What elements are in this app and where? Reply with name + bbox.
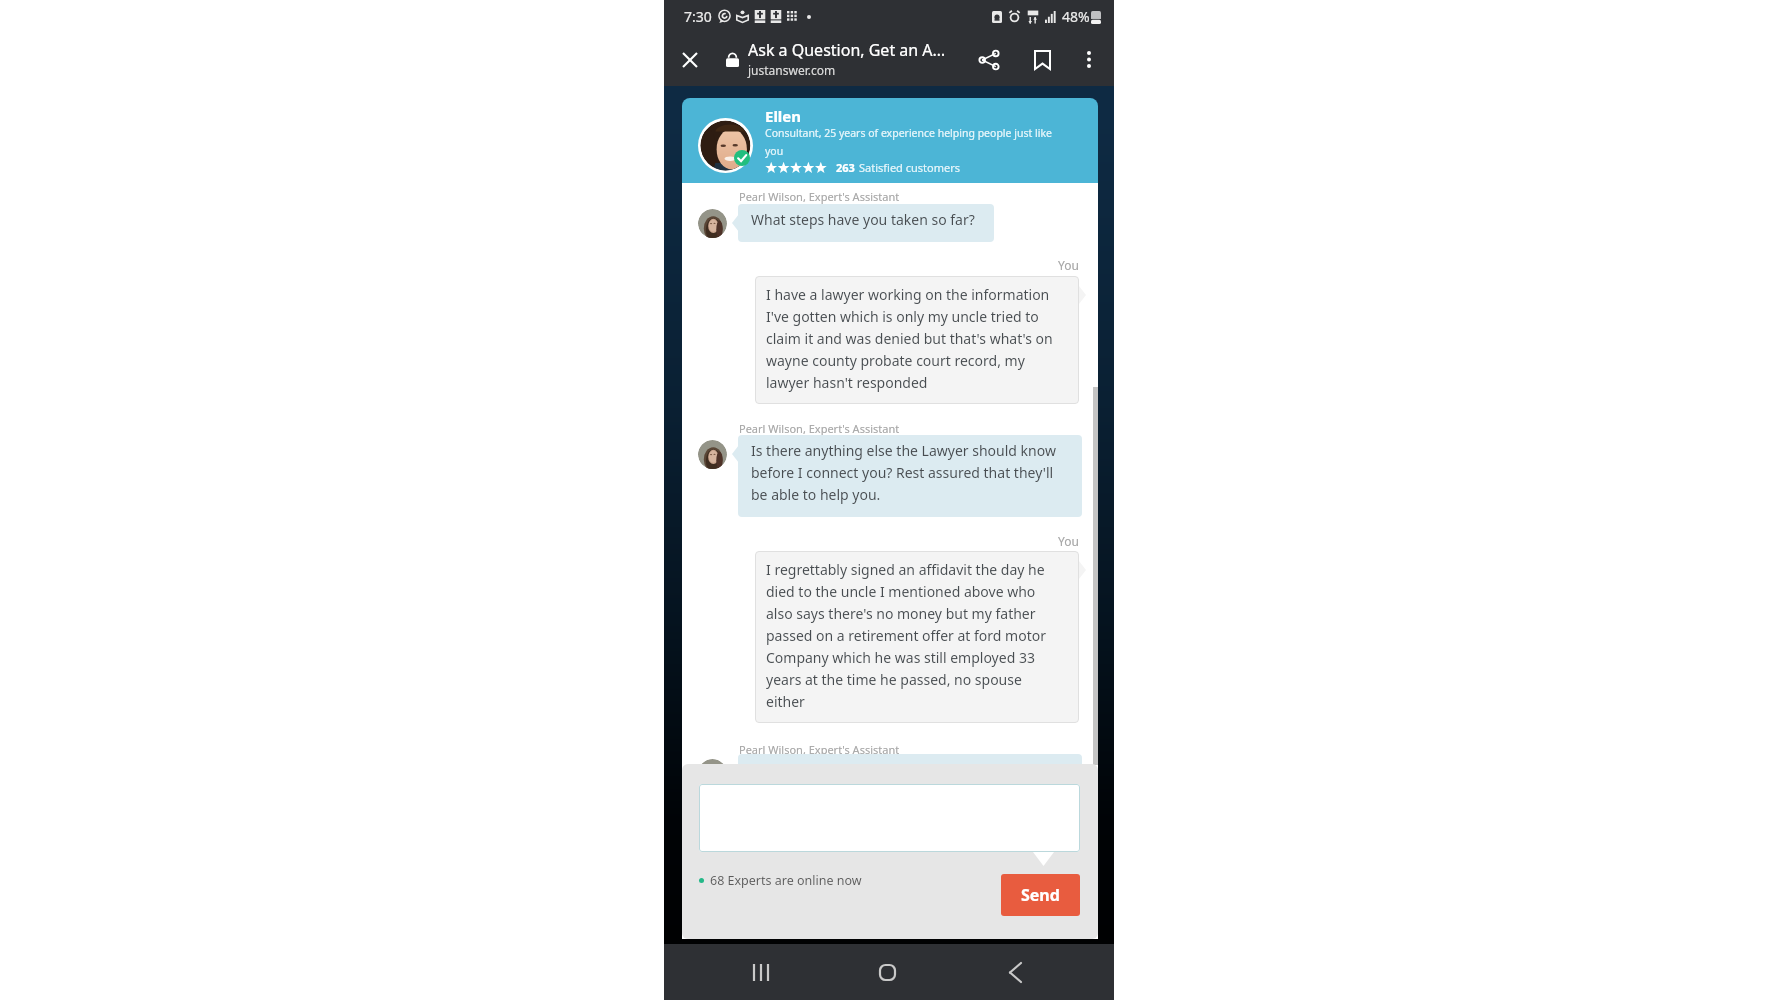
button[interactable]: I have a lawyer working on the informati… <box>755 276 1079 404</box>
staticText: You <box>1058 533 1079 549</box>
staticText: Pearl Wilson, Expert's Assistant <box>739 421 900 436</box>
staticText: 263 <box>836 160 855 175</box>
staticText: Ellen <box>765 106 802 126</box>
staticText: Send <box>1021 884 1060 906</box>
button[interactable]: Back <box>985 944 1045 1000</box>
staticText: Is there anything else the Lawyer should… <box>751 441 1056 504</box>
staticText: Is there anything else <box>751 760 893 779</box>
button[interactable]: I regrettably signed an affidavit the da… <box>755 551 1079 723</box>
staticText: Consultant, 25 years of experience helpi… <box>765 126 1072 158</box>
button[interactable]: Home <box>857 944 917 1000</box>
staticText: 7:30 <box>684 7 712 26</box>
button[interactable]: What steps have you taken so far? <box>738 204 994 242</box>
button[interactable] <box>699 784 1080 852</box>
staticText: You <box>1058 257 1079 273</box>
staticText: Pearl Wilson, Expert's Assistant <box>739 189 900 204</box>
button[interactable]: Close <box>664 33 716 86</box>
staticText: Ask a Question, Get an A… <box>748 39 946 61</box>
staticText: 48% <box>1062 7 1090 26</box>
button[interactable]: Ellen <box>682 98 1098 183</box>
button[interactable]: Share <box>957 33 1021 86</box>
button[interactable]: Send <box>1001 874 1080 916</box>
staticText: Satisfied customers <box>859 160 961 175</box>
button[interactable]: Bookmark <box>1021 33 1063 86</box>
staticText: What steps have you taken so far? <box>751 210 975 229</box>
staticText: justanswer.com <box>748 62 836 78</box>
staticText: Pearl Wilson, Expert's Assistant <box>739 742 900 757</box>
button[interactable]: More options <box>1063 33 1114 86</box>
staticText: I have a lawyer working on the informati… <box>766 285 1053 392</box>
button[interactable]: Is there anything else <box>738 754 1082 792</box>
staticText: 68 Experts are online now <box>710 872 862 889</box>
button[interactable]: Recent apps <box>731 944 791 1000</box>
staticText: I regrettably signed an affidavit the da… <box>766 560 1046 711</box>
button[interactable]: Is there anything else the Lawyer should… <box>738 435 1082 517</box>
